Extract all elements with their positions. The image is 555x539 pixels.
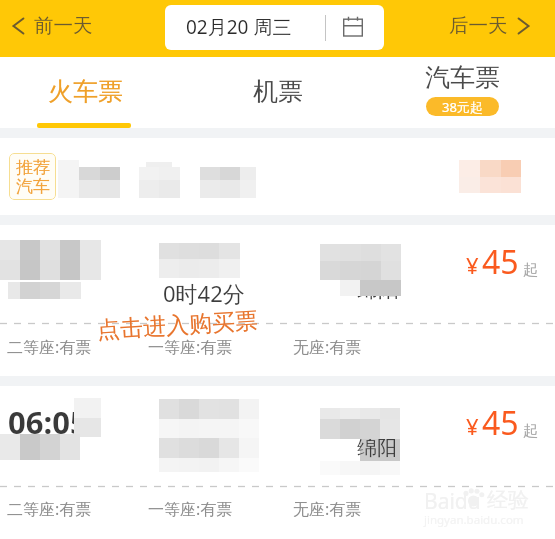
- staticText: 45: [482, 240, 519, 284]
- staticText: 06:05: [8, 401, 88, 443]
- staticText: 二等座:有票: [7, 498, 92, 520]
- staticText: 0时42分: [163, 278, 245, 308]
- button[interactable]: 后一天: [443, 0, 536, 51]
- staticText: jingyan.baidu.com: [424, 512, 524, 528]
- button[interactable]: 前一天: [6, 0, 99, 51]
- staticText: 无座:有票: [293, 498, 362, 520]
- staticText: 38元起: [442, 98, 483, 116]
- staticText: ¥: [466, 411, 479, 441]
- button[interactable]: 02月20 周三: [165, 5, 384, 50]
- staticText: 45: [482, 401, 519, 445]
- staticText: 一等座:有票: [148, 498, 233, 520]
- staticText: 机票: [253, 76, 303, 107]
- staticText: 二等座:有票: [7, 336, 92, 358]
- button[interactable]: 0时42分: [0, 225, 555, 376]
- staticText: ¥: [466, 250, 479, 280]
- other: Pick date: [343, 16, 363, 37]
- staticText: 经验: [487, 487, 529, 513]
- staticText: 前一天: [34, 13, 93, 38]
- staticText: 火车票: [48, 76, 123, 107]
- staticText: 推荐 汽车: [16, 157, 50, 197]
- staticText: 绵阳: [357, 277, 399, 303]
- staticText: 后一天: [449, 13, 508, 38]
- staticText: 绵阳: [357, 436, 397, 461]
- staticText: 02月20 周三: [186, 14, 292, 40]
- staticText: 无座:有票: [293, 336, 362, 358]
- staticText: 点击进入购买票: [96, 306, 259, 345]
- button[interactable]: 火车票: [0, 57, 185, 128]
- staticText: 起: [523, 422, 538, 441]
- staticText: Baidu: [424, 487, 481, 516]
- staticText: 汽车票: [425, 62, 500, 93]
- staticText: 一等座:有票: [148, 336, 233, 358]
- button[interactable]: 机票: [185, 57, 370, 128]
- button[interactable]: 06:05: [0, 386, 555, 539]
- button[interactable]: 汽车票: [370, 57, 555, 128]
- staticText: 起: [523, 261, 538, 280]
- button[interactable]: 推荐 汽车: [0, 138, 555, 215]
